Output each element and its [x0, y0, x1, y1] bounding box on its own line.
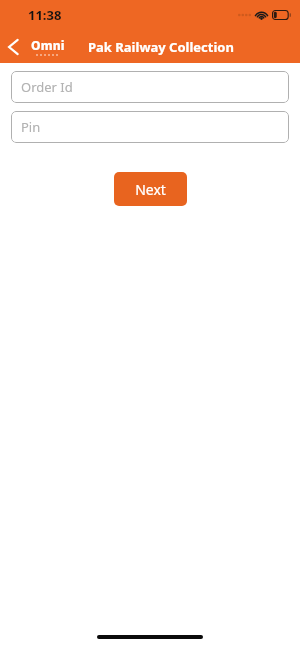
staticText: Pak Railway Collection — [88, 38, 234, 56]
button[interactable]: Back — [0, 33, 26, 61]
staticText: Next — [135, 180, 166, 199]
staticText: Order Id — [21, 78, 73, 96]
staticText: 11:38 — [28, 6, 62, 24]
staticText: Pin — [21, 118, 41, 136]
button[interactable]: Next — [114, 172, 187, 206]
button[interactable]: Pin — [11, 111, 289, 143]
button[interactable]: Omni home — [31, 37, 65, 56]
staticText: Omni — [31, 37, 65, 53]
button[interactable]: Order Id — [11, 71, 289, 103]
